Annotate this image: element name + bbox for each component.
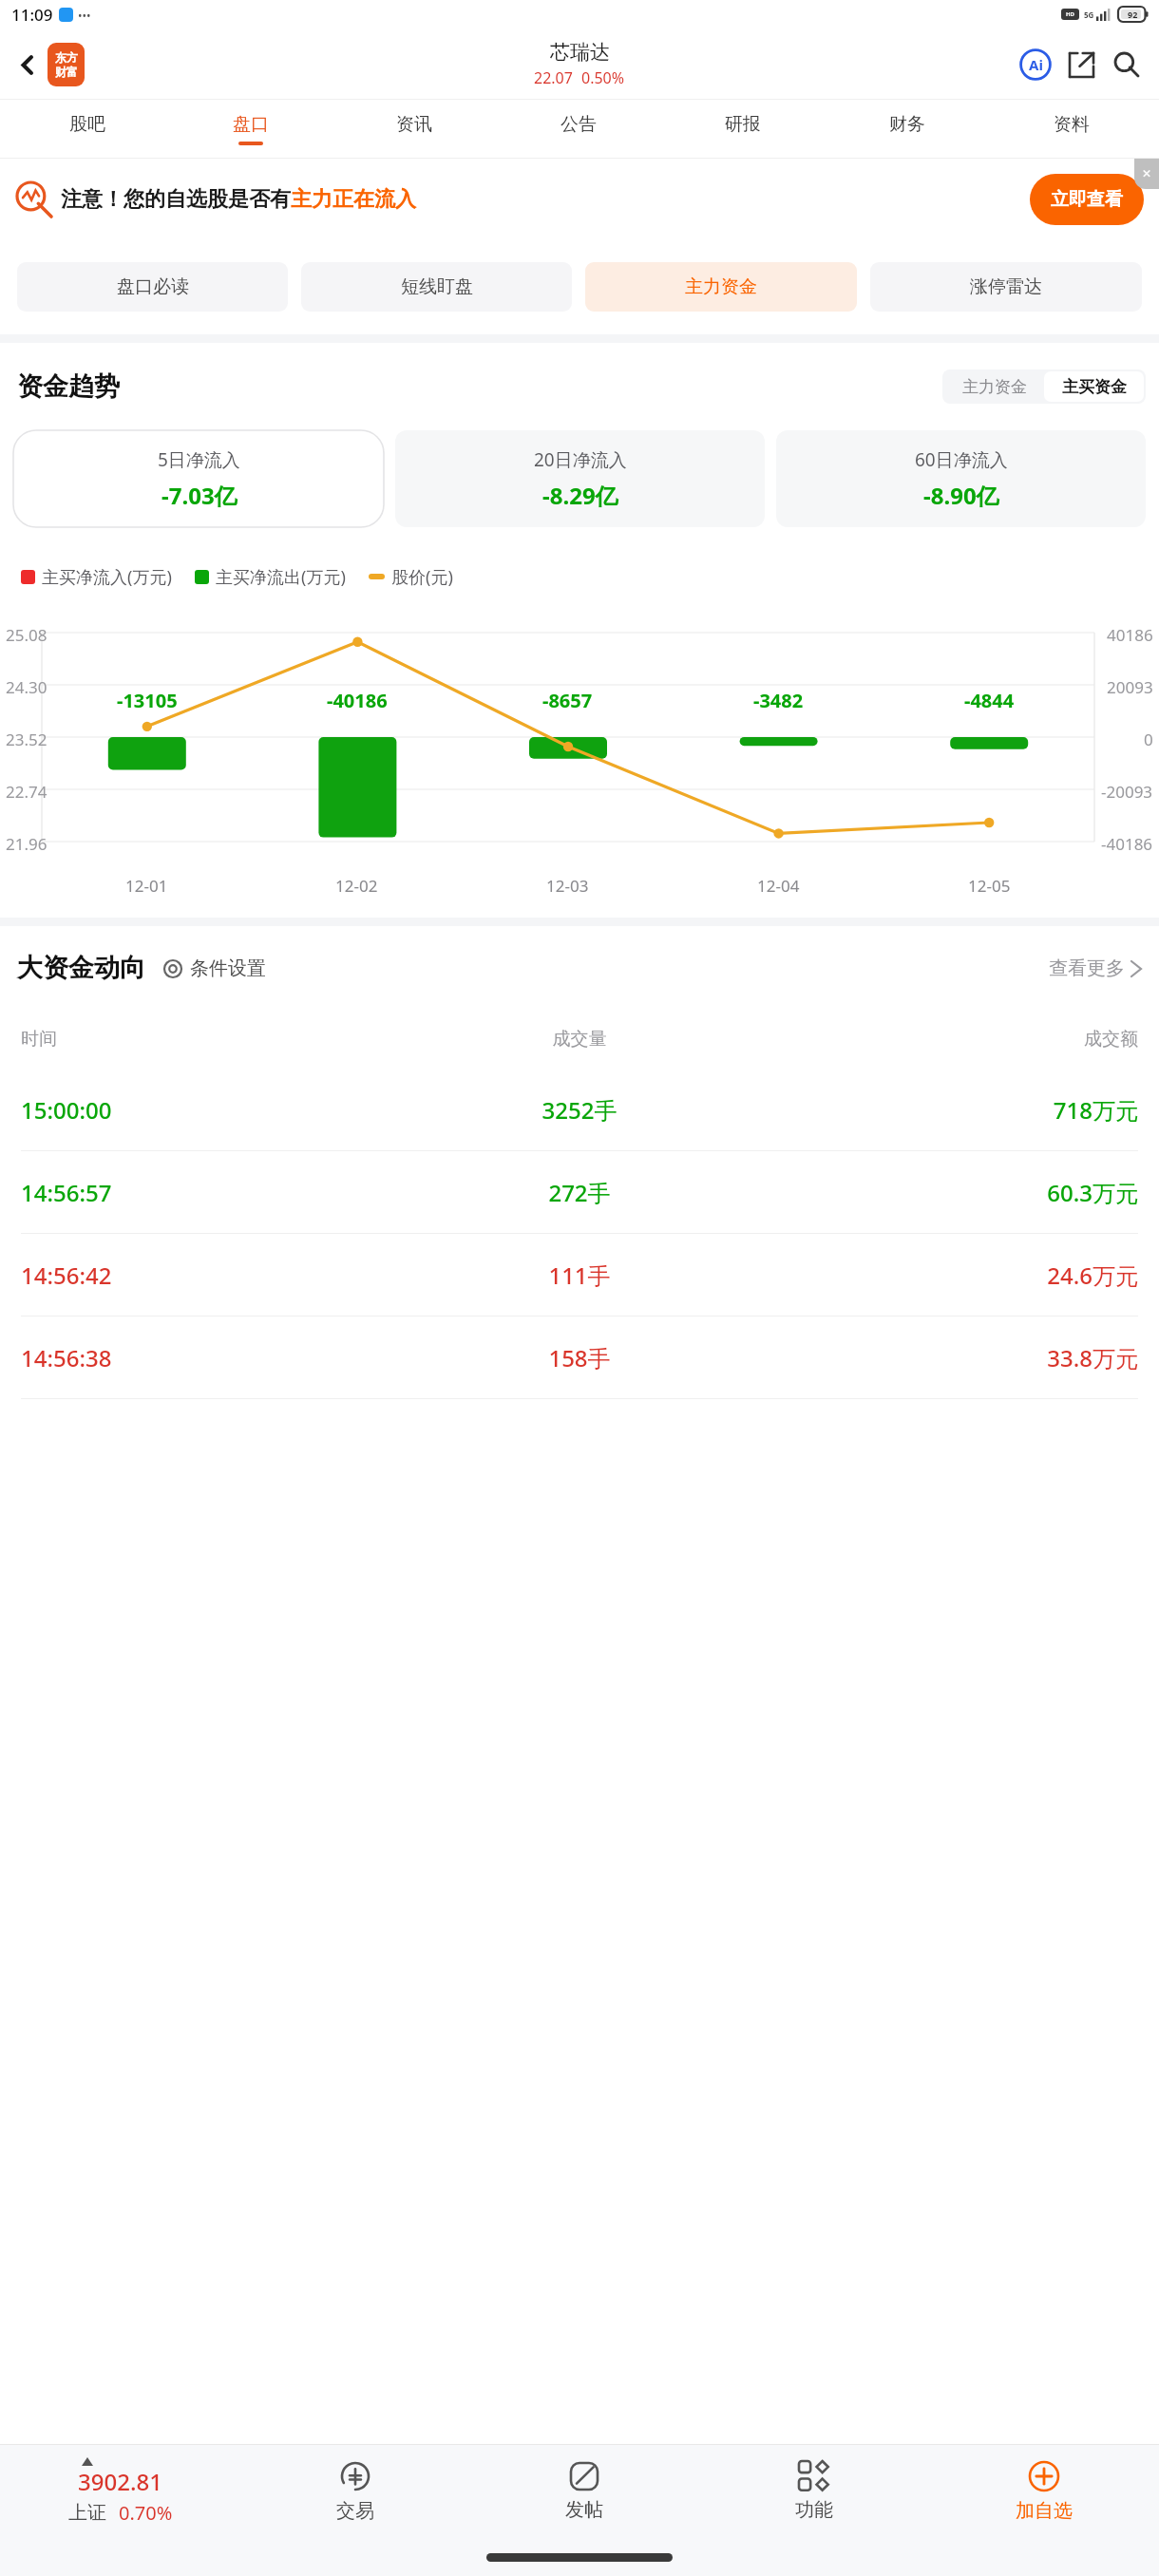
button[interactable]: Post [469, 2461, 699, 2522]
staticText: 0 [1144, 729, 1153, 750]
staticText: 60日净流入 [915, 447, 1008, 472]
staticText: 查看更多 [1049, 957, 1125, 980]
button[interactable]: Features [699, 2461, 929, 2522]
staticText: 14:56:57 [21, 1177, 393, 1208]
button[interactable]: 财务 [825, 100, 989, 159]
staticText: 芯瑞达 [550, 40, 610, 65]
staticText: 40186 [1107, 624, 1153, 646]
button[interactable]: Trade [240, 2460, 469, 2523]
staticText: 财富 [55, 65, 78, 79]
staticText: 0.70% [119, 2500, 173, 2526]
button[interactable]: Close [1134, 159, 1159, 189]
button[interactable]: 14:56:38 [0, 1316, 1159, 1399]
staticText: 14:56:42 [21, 1260, 393, 1291]
staticText: -8.29亿 [542, 480, 618, 511]
staticText: 60.3万元 [766, 1177, 1138, 1208]
button[interactable]: 3902.81 [0, 2457, 240, 2526]
button[interactable]: 60日净流入 [776, 430, 1146, 527]
button[interactable]: 15:00:00 [0, 1069, 1159, 1151]
button[interactable]: 涨停雷达 [870, 262, 1142, 312]
staticText: 22.74 [6, 781, 47, 803]
staticText: 上证 [68, 2501, 106, 2525]
staticText: 22.07 [534, 67, 573, 88]
staticText: 15:00:00 [21, 1094, 393, 1126]
staticText: 158手 [393, 1342, 766, 1373]
staticText: 条件设置 [190, 957, 266, 980]
staticText: 272手 [393, 1177, 766, 1208]
button[interactable]: 主力资金 [944, 371, 1044, 402]
button[interactable]: 主力资金 [585, 262, 857, 312]
staticText: -13105 [117, 688, 178, 713]
staticText: 资料 [1054, 113, 1090, 136]
button[interactable]: 研报 [660, 100, 825, 159]
button[interactable]: East Money [47, 43, 85, 86]
staticText: -40186 [327, 688, 388, 713]
staticText: HD [1066, 10, 1074, 18]
button[interactable]: 短线盯盘 [301, 262, 572, 312]
staticText: 加自选 [1016, 2499, 1073, 2523]
staticText: 发帖 [565, 2498, 603, 2522]
button[interactable]: 主买资金 [1044, 371, 1144, 402]
staticText: 5G [1084, 9, 1094, 20]
staticText: 12-03 [546, 875, 589, 897]
staticText: 股价(元) [391, 565, 453, 589]
staticText: 12-05 [968, 875, 1011, 897]
staticText: 主买资金 [1062, 377, 1127, 397]
staticText: 研报 [725, 113, 761, 136]
button[interactable]: 资料 [989, 100, 1153, 159]
staticText: 主力资金 [685, 275, 757, 298]
staticText: 20日净流入 [534, 447, 627, 472]
staticText: 11:09 [11, 4, 53, 26]
button[interactable]: 5日净流入 [13, 430, 384, 527]
button[interactable]: 股吧 [6, 100, 169, 159]
button[interactable]: 14:56:57 [0, 1151, 1159, 1234]
button[interactable]: 立即查看 [1030, 174, 1144, 225]
staticText: 立即查看 [1051, 188, 1123, 211]
staticText: 24.30 [6, 676, 47, 698]
staticText: 主力资金 [962, 377, 1027, 397]
staticText: 12-04 [757, 875, 800, 897]
staticText: 25.08 [6, 624, 47, 646]
staticText: 股吧 [69, 113, 105, 136]
staticText: 23.52 [6, 729, 47, 750]
staticText: ••• [78, 8, 91, 23]
button[interactable]: AI [1013, 42, 1058, 87]
button[interactable]: 查看更多 [1049, 957, 1142, 980]
staticText: 0.50% [581, 67, 625, 88]
button[interactable]: 公告 [496, 100, 660, 159]
button[interactable]: 20日净流入 [395, 430, 765, 527]
staticText: 您的自选股是否有 [123, 186, 291, 213]
staticText: 主买净流出(万元) [216, 565, 346, 589]
button[interactable]: 盘口必读 [17, 262, 288, 312]
button[interactable]: 加自选 [929, 2460, 1159, 2523]
button[interactable]: 盘口 [169, 100, 332, 159]
staticText: 公告 [560, 113, 597, 136]
staticText: 资金趋势 [17, 370, 120, 403]
staticText: 时间 [21, 1028, 393, 1051]
staticText: 涨停雷达 [970, 275, 1042, 298]
staticText: -7.03亿 [161, 480, 237, 511]
staticText: 成交额 [766, 1028, 1138, 1051]
staticText: 成交量 [393, 1028, 766, 1051]
button[interactable]: 资讯 [332, 100, 496, 159]
staticText: 3252手 [393, 1094, 766, 1126]
button[interactable]: Share [1058, 42, 1104, 87]
staticText: 3902.81 [78, 2466, 162, 2497]
staticText: 24.6万元 [766, 1260, 1138, 1291]
staticText: 大资金动向 [17, 952, 145, 984]
staticText: 主力正在流入 [291, 186, 416, 213]
staticText: 20093 [1107, 676, 1153, 698]
button[interactable]: 条件设置 [162, 957, 266, 980]
staticText: 注意！ [61, 186, 123, 213]
staticText: -20093 [1101, 781, 1153, 803]
staticText: 33.8万元 [766, 1342, 1138, 1373]
button[interactable]: 14:56:42 [0, 1234, 1159, 1316]
staticText: -40186 [1101, 833, 1153, 855]
button[interactable]: Back [8, 45, 47, 85]
staticText: 12-02 [335, 875, 378, 897]
staticText: -4844 [964, 688, 1015, 713]
staticText: 14:56:38 [21, 1342, 393, 1373]
staticText: Ai [1029, 55, 1043, 74]
staticText: -8.90亿 [923, 480, 999, 511]
button[interactable]: Search [1104, 42, 1149, 87]
